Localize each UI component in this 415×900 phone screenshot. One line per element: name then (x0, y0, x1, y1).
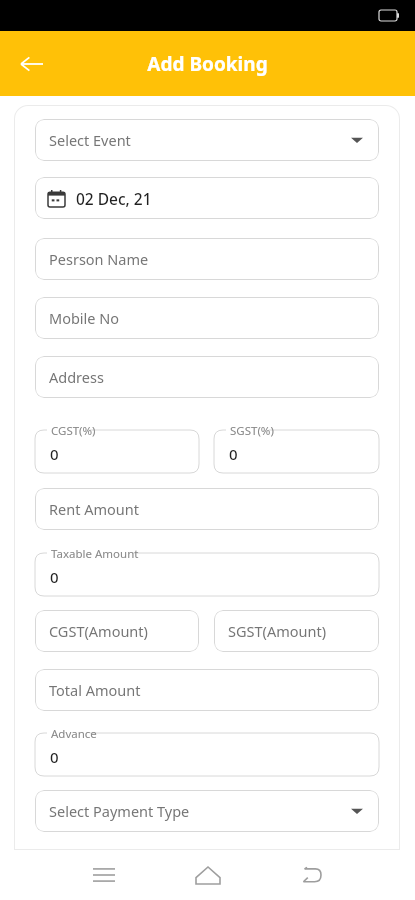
button[interactable]: Back (287, 851, 335, 899)
staticText: Select Payment Type (49, 801, 190, 821)
button[interactable]: 02 Dec, 21 (35, 177, 379, 219)
staticText: Pesrson Name (49, 249, 149, 269)
button[interactable]: Select Payment Type (35, 790, 379, 832)
staticText: 02 Dec, 21 (76, 188, 152, 209)
staticText: SGST(Amount) (228, 621, 326, 641)
staticText: 0 (229, 444, 238, 464)
staticText: CGST(Amount) (49, 621, 148, 641)
staticText: 0 (50, 567, 59, 587)
staticText: CGST(%) (51, 423, 96, 439)
button[interactable]: Home (184, 851, 232, 899)
staticText: Total Amount (49, 680, 141, 700)
button[interactable]: SGST(Amount) (214, 610, 379, 652)
button[interactable]: Rent Amount (35, 488, 379, 530)
button[interactable]: Select Event (35, 119, 379, 161)
staticText: Taxable Amount (51, 546, 139, 562)
button[interactable]: CGST(%) (35, 423, 199, 473)
staticText: Advance (51, 726, 97, 742)
button[interactable]: CGST(Amount) (35, 610, 199, 652)
staticText: Address (49, 367, 104, 387)
button[interactable]: Pesrson Name (35, 238, 379, 280)
staticText: Rent Amount (49, 499, 139, 519)
staticText: Mobile No (49, 308, 120, 328)
button[interactable]: Address (35, 356, 379, 398)
staticText: SGST(%) (230, 423, 274, 439)
staticText: Add Booking (147, 51, 268, 77)
button[interactable]: Back (10, 42, 54, 86)
staticText: 0 (50, 444, 59, 464)
button[interactable]: SGST(%) (214, 423, 379, 473)
button[interactable]: Advance (35, 726, 379, 776)
button[interactable]: Recent apps (80, 851, 128, 899)
staticText: Select Event (49, 130, 131, 150)
button[interactable]: Mobile No (35, 297, 379, 339)
button[interactable]: Taxable Amount (35, 546, 379, 596)
staticText: 0 (50, 747, 59, 767)
button[interactable]: Total Amount (35, 669, 379, 711)
